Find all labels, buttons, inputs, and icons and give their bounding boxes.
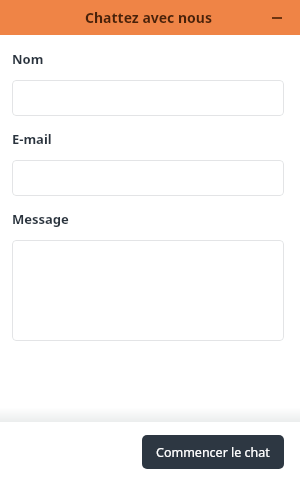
- staticText: Commencer le chat: [156, 444, 270, 461]
- button[interactable]: Minimize chat: [265, 6, 289, 30]
- button[interactable]: Commencer le chat: [142, 435, 284, 469]
- button[interactable]: [12, 240, 284, 341]
- button[interactable]: [12, 80, 284, 116]
- staticText: E-mail: [12, 130, 52, 148]
- staticText: Nom: [12, 50, 44, 68]
- staticText: Message: [12, 210, 69, 228]
- staticText: Chattez avec nous: [85, 8, 212, 27]
- button[interactable]: [12, 160, 284, 196]
